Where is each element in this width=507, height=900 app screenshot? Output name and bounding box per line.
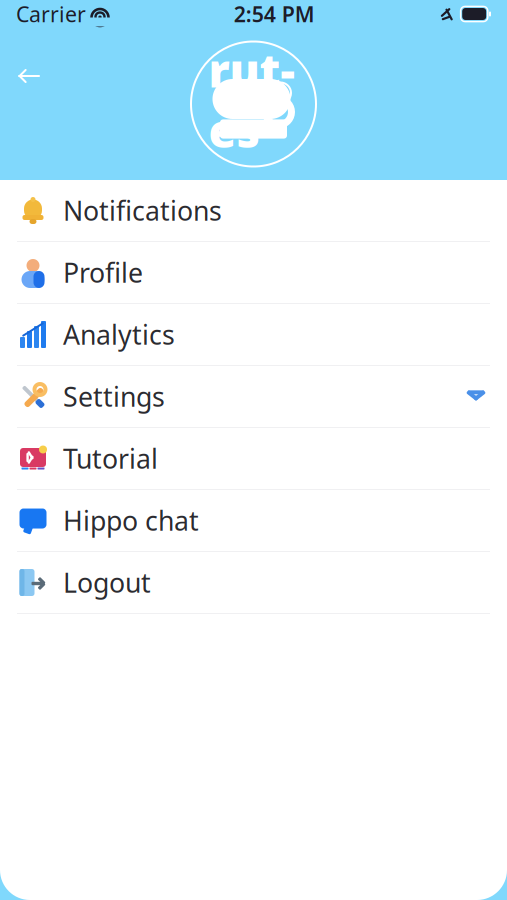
button[interactable]: Hippo chat: [0, 490, 507, 551]
staticText: Settings: [63, 379, 165, 414]
staticText: Notifications: [63, 193, 222, 228]
button[interactable]: Notifications: [0, 180, 507, 241]
staticText: rutes: [208, 40, 294, 160]
button[interactable]: Profile: [0, 242, 507, 303]
staticText: Carrier: [16, 0, 86, 28]
button[interactable]: Logout: [0, 552, 507, 613]
button[interactable]: Analytics: [0, 304, 507, 365]
staticText: Logout: [63, 565, 151, 600]
button[interactable]: Settings: [0, 366, 507, 427]
staticText: Tutorial: [63, 441, 158, 476]
button[interactable]: Back: [4, 53, 54, 99]
button[interactable]: Profile picture: [188, 38, 319, 169]
staticText: 2:54 PM: [234, 0, 315, 28]
button[interactable]: Tutorial: [0, 428, 507, 489]
staticText: Analytics: [63, 317, 175, 352]
staticText: Profile: [63, 255, 143, 290]
staticText: Hippo chat: [63, 503, 199, 538]
